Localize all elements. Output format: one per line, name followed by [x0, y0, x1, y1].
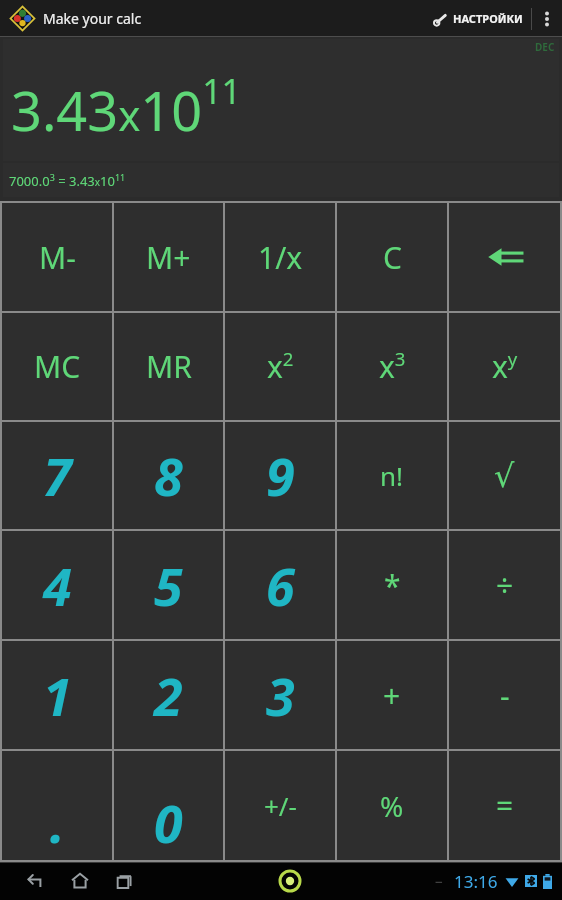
button[interactable]: + [337, 641, 447, 749]
button[interactable]: 7 [2, 422, 112, 529]
button[interactable]: MR [114, 313, 223, 420]
staticText: n! [380, 458, 404, 493]
button[interactable]: 5 [114, 531, 223, 639]
staticText: 5 [154, 550, 183, 621]
button[interactable]: 1 [2, 641, 112, 749]
button[interactable]: Backspace [449, 203, 560, 311]
staticText: 2 [154, 660, 183, 731]
staticText: 1/x [258, 237, 303, 278]
button[interactable]: DEC [3, 39, 559, 161]
staticText: +/- [264, 788, 297, 823]
button[interactable]: ÷ [449, 531, 560, 639]
button[interactable]: n! [337, 422, 447, 529]
staticText: 4 [43, 550, 72, 621]
button[interactable]: - [449, 641, 560, 749]
button[interactable]: НАСТРОЙКИ [424, 0, 531, 37]
staticText: НАСТРОЙКИ [453, 11, 523, 26]
button[interactable]: MC [2, 313, 112, 420]
button[interactable]: 6 [225, 531, 335, 639]
staticText: 7000.03 = 3.43x1011 [9, 171, 126, 190]
staticText: 8 [154, 440, 183, 511]
button[interactable]: x2 [225, 313, 335, 420]
staticText: . [50, 787, 65, 858]
button[interactable]: 0 [114, 751, 223, 860]
staticText: x2 [267, 346, 294, 387]
button[interactable]: 1/x [225, 203, 335, 311]
staticText: = [496, 785, 514, 826]
button[interactable]: xy [449, 313, 560, 420]
staticText: C [383, 237, 402, 278]
staticText: - [500, 675, 510, 716]
staticText: 1 [43, 660, 72, 731]
staticText: M- [39, 237, 76, 278]
staticText: 7 [43, 440, 72, 511]
staticText: Make your calc [43, 9, 142, 28]
staticText: + [383, 675, 401, 716]
staticText: 6 [266, 550, 295, 621]
button[interactable]: Assistant [273, 864, 307, 898]
button[interactable]: 2 [114, 641, 223, 749]
button[interactable]: M+ [114, 203, 223, 311]
button[interactable]: C [337, 203, 447, 311]
button[interactable]: 4 [2, 531, 112, 639]
staticText: 3 [266, 660, 295, 731]
staticText: M+ [146, 237, 191, 278]
button[interactable]: x3 [337, 313, 447, 420]
button[interactable]: 7000.03 = 3.43x1011 [3, 163, 559, 197]
button[interactable]: . [2, 751, 112, 860]
button[interactable]: = [449, 751, 560, 860]
staticText: MR [146, 346, 192, 387]
button[interactable]: % [337, 751, 447, 860]
staticText: DEC [535, 40, 555, 54]
staticText: xy [492, 346, 518, 387]
staticText: 0 [154, 787, 183, 858]
button[interactable]: * [337, 531, 447, 639]
button[interactable]: 3 [225, 641, 335, 749]
button[interactable]: Square root [449, 422, 560, 529]
button[interactable]: Home [58, 862, 102, 900]
button[interactable]: M- [2, 203, 112, 311]
staticText: MC [34, 346, 81, 387]
button[interactable]: More options [532, 0, 562, 37]
staticText: √ [494, 457, 515, 494]
staticText: 13:16 [454, 870, 498, 893]
button[interactable]: 9 [225, 422, 335, 529]
staticText: ÷ [496, 565, 514, 606]
staticText: 9 [266, 440, 295, 511]
staticText: x3 [379, 346, 406, 387]
staticText: 3.43x1011 [11, 68, 242, 146]
staticText: * [384, 565, 401, 606]
button[interactable]: 8 [114, 422, 223, 529]
button[interactable]: +/- [225, 751, 335, 860]
button[interactable]: Back [14, 862, 58, 900]
staticText: % [380, 787, 404, 825]
staticText: − [435, 872, 444, 891]
button[interactable]: Recents [102, 862, 146, 900]
